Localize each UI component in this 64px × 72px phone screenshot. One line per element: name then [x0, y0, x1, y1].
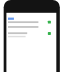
button[interactable]: Toggle Wi-Fi — [4, 13, 35, 16]
button[interactable] — [4, 16, 35, 19]
button[interactable]: Toggle Bluetooth — [4, 20, 35, 23]
other: Toggle Bluetooth — [28, 20, 31, 23]
button[interactable] — [4, 23, 35, 26]
button[interactable]: Settings — [5, 10, 10, 13]
